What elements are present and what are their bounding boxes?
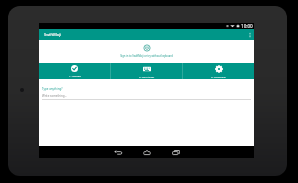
button[interactable]: 3. Customize [183,63,254,79]
staticText: Write something... [42,94,67,98]
staticText: 10:00 [241,23,253,29]
staticText: 1. Activate [69,74,81,77]
button[interactable]: Home [143,146,151,158]
staticText: Type anything? [42,87,63,91]
staticText: Sign in to SwiftMoji or try without keyb… [120,54,173,58]
staticText: SwiftMoji [44,32,62,37]
button[interactable]: Back [114,146,122,158]
staticText: 3. Customize [211,75,226,78]
button[interactable]: More options [245,29,254,40]
button[interactable]: 2. Send Mojis [111,63,182,79]
button[interactable]: Recent apps [172,146,180,158]
staticText: 2. Send Mojis [139,75,155,78]
button[interactable]: 1. Activate [39,63,110,79]
